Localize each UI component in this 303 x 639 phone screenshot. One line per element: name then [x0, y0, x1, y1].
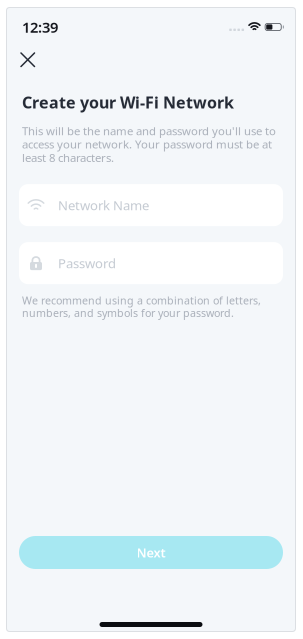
- staticText: Network Name: [58, 196, 149, 214]
- staticText: Next: [136, 544, 165, 561]
- button[interactable]: Close: [15, 47, 40, 72]
- button[interactable]: Next: [19, 536, 283, 569]
- staticText: 12:39: [22, 17, 58, 37]
- staticText: This will be the name and password you'l…: [22, 124, 276, 164]
- staticText: Create your Wi-Fi Network: [22, 91, 234, 113]
- staticText: Password: [58, 254, 116, 272]
- staticText: We recommend using a combination of lett…: [22, 294, 261, 319]
